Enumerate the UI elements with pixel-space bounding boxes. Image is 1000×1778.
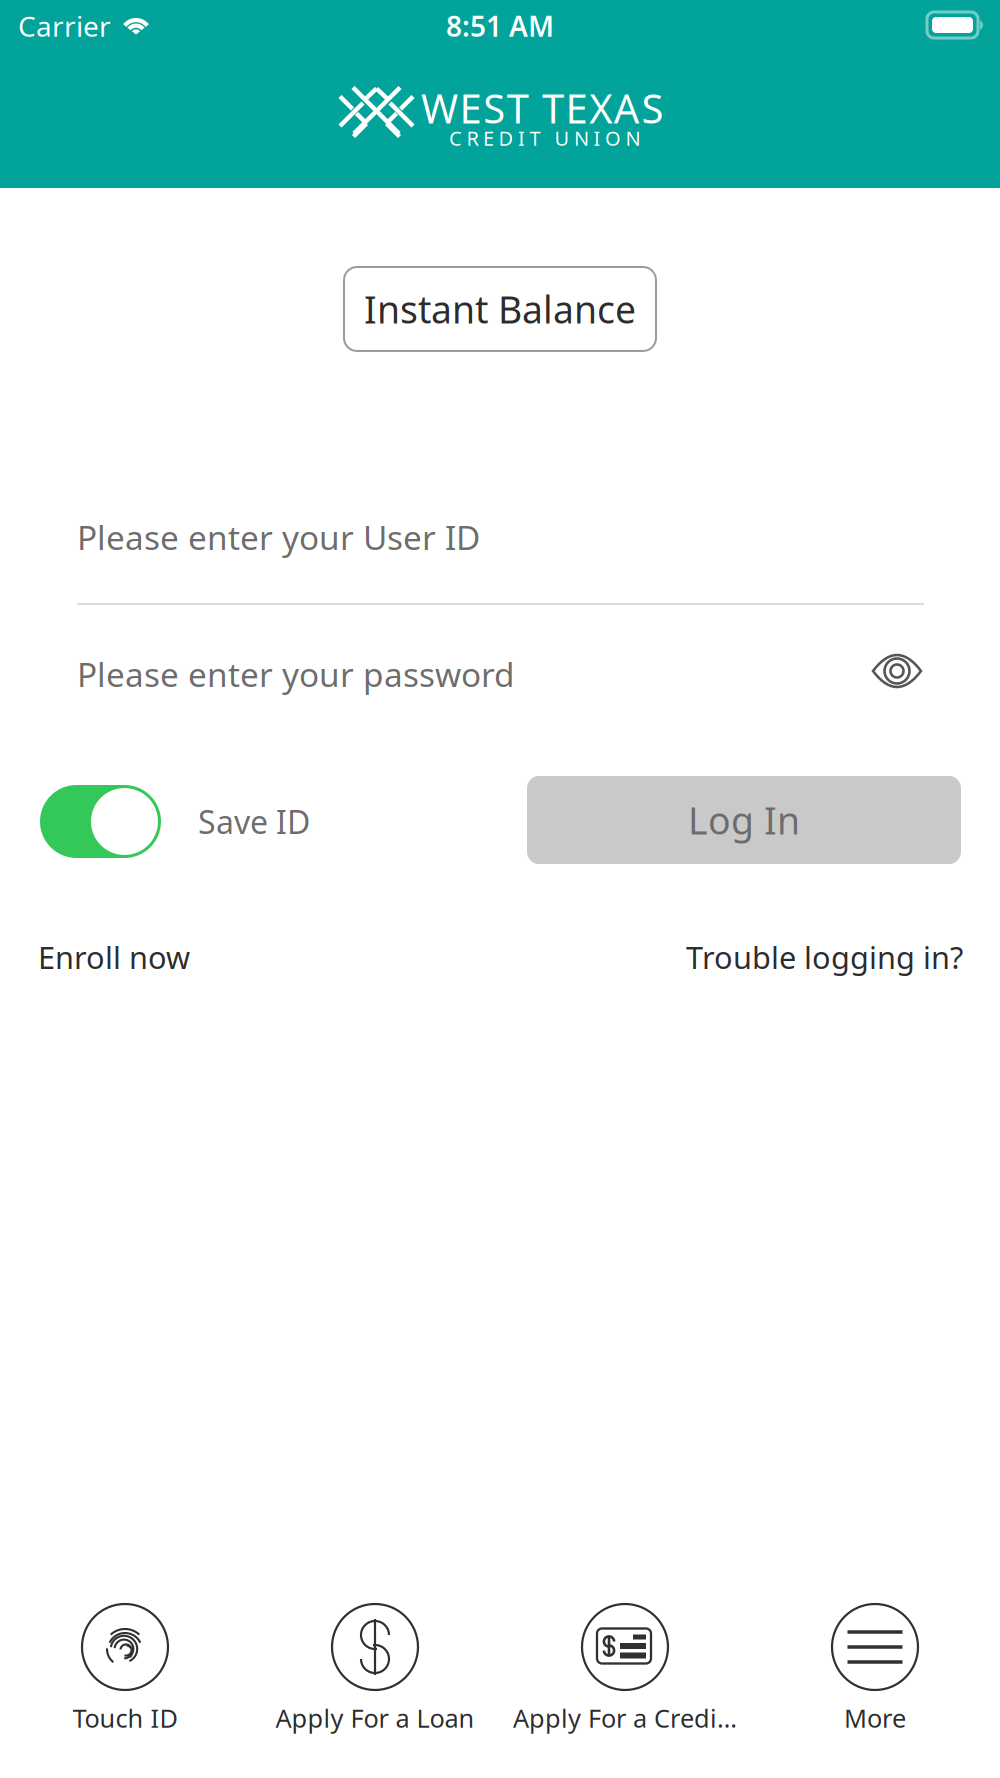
staticText: Save ID: [198, 800, 310, 843]
staticText: Touch ID: [72, 1701, 177, 1735]
button[interactable]: Please enter your password: [77, 640, 857, 708]
button[interactable]: More: [750, 1601, 1000, 1737]
staticText: Instant Balance: [364, 284, 636, 334]
staticText: WEST TEXAS: [421, 81, 663, 134]
button[interactable]: Trouble logging in?: [643, 935, 963, 979]
button[interactable]: Show password: [872, 654, 922, 688]
staticText: CREDIT UNION: [449, 125, 640, 151]
staticText: Please enter your password: [77, 652, 515, 696]
button[interactable]: Save ID: [40, 785, 358, 858]
button[interactable]: Enroll now: [38, 935, 238, 979]
button[interactable]: Instant Balance: [344, 267, 656, 351]
staticText: Log In: [688, 795, 800, 845]
staticText: Apply For a Loan: [275, 1701, 474, 1735]
button[interactable]: Please enter your User ID: [77, 503, 923, 571]
staticText: Enroll now: [38, 937, 190, 977]
button[interactable]: Apply For a Credi…: [500, 1601, 750, 1737]
staticText: Trouble logging in?: [686, 937, 963, 977]
staticText: 8:51 AM: [446, 7, 554, 45]
button[interactable]: Touch ID: [0, 1601, 250, 1737]
button[interactable]: Log In: [527, 776, 961, 864]
staticText: Carrier: [18, 7, 111, 45]
staticText: Apply For a Credi…: [513, 1701, 737, 1735]
staticText: Please enter your User ID: [77, 515, 480, 559]
staticText: More: [844, 1701, 906, 1735]
button[interactable]: Apply For a Loan: [250, 1601, 500, 1737]
